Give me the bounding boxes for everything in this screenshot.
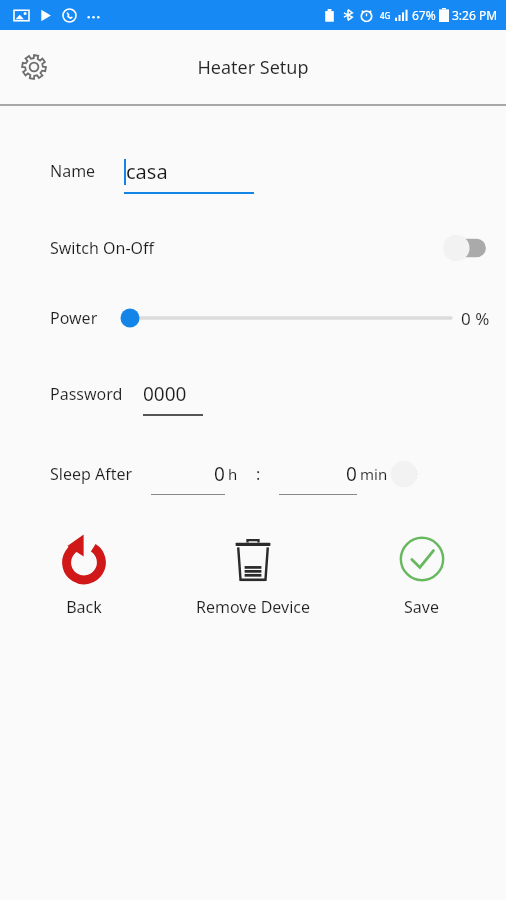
button[interactable]: Settings — [10, 43, 58, 91]
button[interactable]: Back — [0, 524, 168, 624]
staticText: Sleep After — [50, 463, 133, 485]
staticText: 3:26 PM — [452, 7, 498, 23]
staticText: min — [360, 464, 388, 484]
staticText: 4G — [380, 10, 391, 21]
button[interactable]: 0000 — [143, 372, 203, 416]
staticText: Back — [66, 596, 102, 618]
staticText: Power — [50, 307, 98, 329]
button[interactable]: 0 — [151, 453, 225, 495]
staticText: 0 % — [461, 307, 490, 330]
staticText: 67% — [412, 7, 436, 23]
staticText: Remove Device — [196, 596, 310, 618]
button[interactable]: Power slider — [120, 300, 451, 336]
staticText: Heater Setup — [197, 55, 309, 80]
staticText: 0 — [214, 461, 225, 487]
button[interactable]: 0 — [279, 453, 357, 495]
button[interactable]: Remove Device — [168, 524, 337, 624]
button[interactable]: Sleep after toggle — [388, 454, 422, 494]
staticText: h — [228, 464, 238, 484]
button[interactable]: Switch On-Off toggle — [436, 228, 494, 268]
staticText: Switch On-Off — [50, 237, 155, 259]
staticText: Name — [50, 160, 96, 182]
button[interactable]: Save — [337, 524, 506, 624]
staticText: casa — [126, 158, 168, 185]
staticText: Save — [404, 596, 439, 618]
staticText: 0 — [346, 461, 357, 487]
staticText: Password — [50, 383, 123, 405]
button[interactable]: casa — [124, 148, 254, 194]
staticText: 0000 — [143, 381, 187, 407]
staticText: : — [256, 463, 261, 485]
